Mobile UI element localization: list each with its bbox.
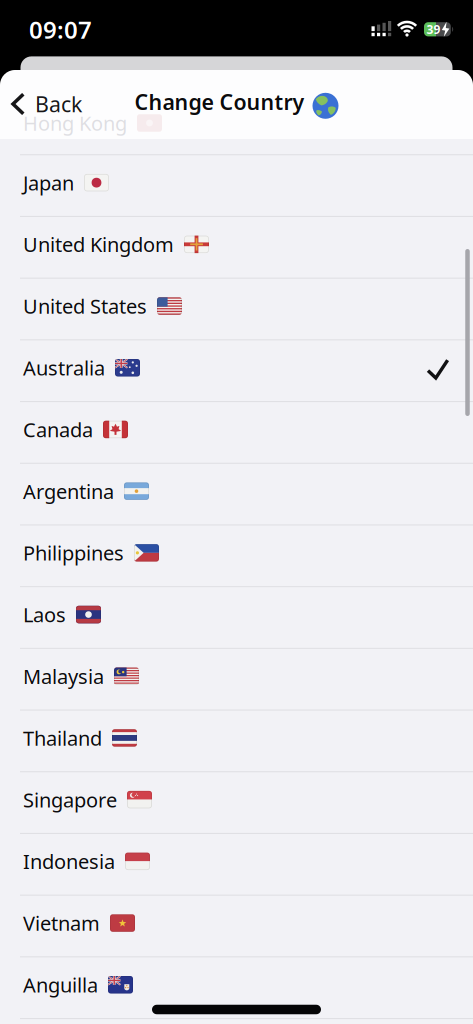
button[interactable]: Australia [0, 337, 473, 399]
button[interactable]: Argentina [0, 460, 473, 522]
staticText: Indonesia [23, 848, 115, 875]
button[interactable]: Indonesia [0, 830, 473, 892]
button[interactable]: Philippines [0, 522, 473, 584]
staticText: United Kingdom [23, 231, 174, 258]
button[interactable]: United States [0, 275, 473, 337]
button[interactable]: United Kingdom [0, 213, 473, 275]
staticText: 39 [426, 21, 440, 37]
button[interactable]: Singapore [0, 769, 473, 830]
button[interactable]: Canada [0, 399, 473, 460]
staticText: United States [23, 293, 147, 319]
staticText: Laos [23, 601, 66, 628]
button[interactable]: Thailand [0, 707, 473, 769]
button[interactable]: Vietnam [0, 892, 473, 954]
staticText: 09:07 [29, 14, 92, 45]
staticText: Back [35, 90, 82, 118]
staticText: Anguilla [23, 971, 98, 998]
staticText: Argentina [23, 478, 114, 504]
staticText: Vietnam [23, 910, 100, 936]
button[interactable]: Malaysia [0, 645, 473, 707]
staticText: Thailand [23, 725, 102, 751]
button[interactable]: Japan [0, 152, 473, 213]
staticText: Canada [23, 416, 93, 443]
staticText: Malaysia [23, 663, 104, 690]
button[interactable]: Back [0, 90, 82, 118]
button[interactable]: Anguilla [0, 954, 473, 1016]
staticText: Hong Kong [23, 110, 127, 136]
staticText: Japan [23, 169, 74, 196]
button[interactable]: Laos [0, 584, 473, 645]
staticText: Philippines [23, 540, 124, 566]
staticText: Singapore [23, 786, 117, 813]
staticText: Australia [23, 354, 105, 381]
staticText: Change Country [134, 88, 304, 116]
